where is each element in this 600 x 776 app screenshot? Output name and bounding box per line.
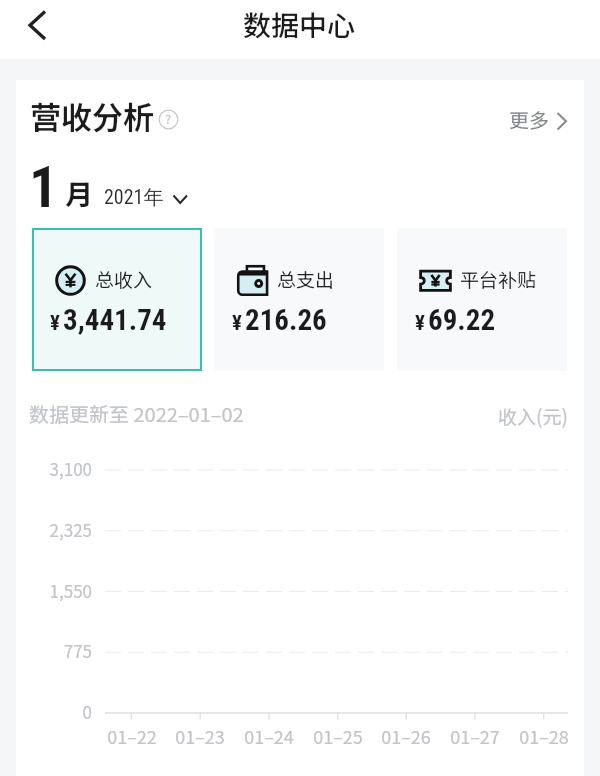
staticText: ¥ [50,311,60,336]
staticText: 01–28 [504,723,584,749]
staticText: 01–24 [229,723,309,749]
staticText: 平台补贴 [460,265,537,293]
staticText: 01–22 [92,723,172,749]
staticText: 0 [17,699,92,724]
button[interactable]: 更多 [509,100,568,138]
staticText: 月 [65,173,94,214]
button[interactable]: 总支出 [214,228,384,371]
staticText: ? [165,109,172,128]
staticText: 1 [29,154,58,221]
staticText: ¥ [415,311,425,336]
staticText: 总收入 [95,265,153,293]
button[interactable]: Back [0,0,58,58]
button[interactable]: 平台补贴 [397,228,567,371]
staticText: 3,100 [17,456,92,481]
staticText: 1,550 [17,578,92,603]
button[interactable]: 总收入 [32,228,202,371]
staticText: 01–27 [435,723,515,749]
staticText: 3,441.74 [63,303,167,337]
staticText: 01–26 [366,723,446,749]
staticText: 更多 [509,105,549,134]
staticText: 营收分析 [30,93,154,138]
button[interactable]: Help [158,109,179,130]
staticText: 收入(元) [498,402,568,430]
staticText: 2,325 [17,517,92,542]
staticText: 总支出 [277,265,335,293]
staticText: ¥ [232,311,242,336]
staticText: 01–25 [298,723,378,749]
staticText: 775 [17,638,92,663]
staticText: 69.22 [428,303,496,337]
staticText: 01–23 [160,723,240,749]
staticText: 2021年 [104,185,164,210]
staticText: 216.26 [245,303,327,337]
staticText: 数据中心 [243,4,356,45]
staticText: 数据更新至 2022–01–02 [29,399,244,428]
button[interactable]: 2021年 [104,181,188,211]
